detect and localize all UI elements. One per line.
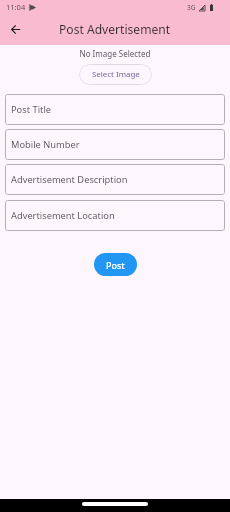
staticText: Post Title xyxy=(11,103,52,116)
button[interactable]: Post Title xyxy=(5,94,225,125)
button[interactable]: Back xyxy=(6,20,26,40)
button[interactable]: Select Image xyxy=(79,64,152,85)
staticText: No Image Selected xyxy=(0,48,230,59)
button[interactable]: Post xyxy=(94,253,137,276)
button[interactable]: Mobile Number xyxy=(5,129,225,160)
button[interactable]: Advertisement Location xyxy=(5,200,225,231)
staticText: Mobile Number xyxy=(11,138,80,151)
staticText: 11:04 xyxy=(6,2,26,12)
staticText: Post xyxy=(106,259,125,271)
staticText: Select Image xyxy=(92,69,140,80)
staticText: 3G xyxy=(187,3,196,12)
staticText: Post Advertisement xyxy=(59,21,171,37)
staticText: Advertisement Description xyxy=(11,173,128,186)
button[interactable]: Advertisement Description xyxy=(5,164,225,195)
staticText: Advertisement Location xyxy=(11,209,115,222)
